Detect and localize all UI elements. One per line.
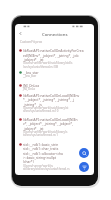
staticText: _jobject*, _jst — [23, 57, 44, 61]
button[interactable] — [15, 93, 94, 113]
button[interactable] — [15, 142, 94, 171]
staticText: ed(JNIEnv*, _jobject*, _jstring*, _job — [23, 53, 79, 57]
staticText: /src/sys/unix/thread.rs:108 — [23, 65, 59, 69]
staticText: _jstring*, _js — [23, 102, 42, 106]
staticText: td/src/sys/unix/thread.rs:1 — [23, 133, 58, 137]
staticText: __bss_star — [23, 70, 39, 74]
staticText: CustomFit prox — [20, 40, 43, 44]
staticText: libRustAPI::nativeCallOnLoad(JNIEnv — [23, 93, 80, 97]
staticText: Connections — [42, 31, 68, 37]
staticText: std::__ndk1::char_traits — [23, 146, 59, 150]
staticText: /Users/runner/work/rust/library/s — [23, 130, 68, 134]
staticText: *, _jobject*, _jstring*, _jstring*, _j — [23, 97, 75, 101]
staticText: d/src/sys/unix/thread.rs:10 — [23, 109, 59, 113]
button[interactable] — [15, 48, 94, 69]
staticText: /Users/runner/work/ru — [23, 164, 54, 168]
staticText: JNI_OnLoa — [23, 83, 40, 87]
button[interactable]: Search — [79, 148, 89, 158]
staticText: v*, _jobject*, _jstring*, _jobject*, — [23, 121, 74, 125]
staticText: /Users/runner/work/rust/library/std/s — [23, 61, 73, 65]
staticText: st/library/std/src/sys/unix/thread.rs — [23, 167, 70, 171]
button[interactable] — [15, 70, 94, 78]
staticText: libRustAPI::nativeCallOnActivityForCrea — [23, 48, 84, 52]
staticText: std::__ndk1::basic_strin — [23, 142, 59, 146]
staticText: libRustAPI::nativeCallOnLoad(JNIEn — [23, 117, 78, 121]
staticText: JNI_OnLo — [23, 87, 36, 91]
staticText: _jobject*, _jst — [23, 126, 44, 130]
button[interactable]: Back — [17, 30, 24, 37]
staticText: /Users/runner/work/rust/library/st — [23, 106, 69, 110]
staticText: std::__ndk1::allocator<cha — [23, 151, 63, 155]
button[interactable] — [15, 83, 94, 91]
staticText: __bss_star — [23, 74, 37, 78]
staticText: (char*) — [23, 159, 34, 163]
button[interactable] — [15, 117, 94, 138]
button[interactable]: Filter — [79, 162, 89, 172]
staticText: >::basic_string<nullpt — [23, 155, 56, 159]
